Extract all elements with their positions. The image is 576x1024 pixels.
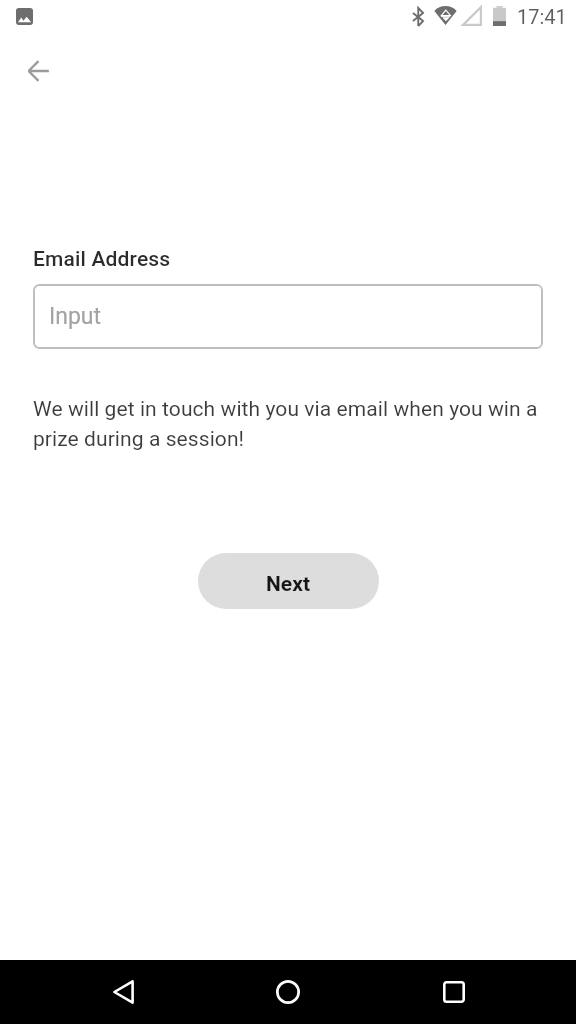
- staticText: 17:41: [517, 5, 567, 28]
- button[interactable]: Navigate back: [75, 967, 171, 1017]
- button[interactable]: Back: [14, 47, 62, 95]
- button[interactable]: Recent apps: [406, 967, 502, 1017]
- staticText: Email Address: [33, 247, 171, 272]
- staticText: Next: [266, 572, 310, 597]
- button[interactable]: Home: [240, 967, 336, 1017]
- staticText: We will get in touch with you via email …: [33, 397, 547, 451]
- staticText: Input: [49, 303, 102, 330]
- button[interactable]: Input: [33, 284, 543, 349]
- button[interactable]: Next: [198, 553, 379, 609]
